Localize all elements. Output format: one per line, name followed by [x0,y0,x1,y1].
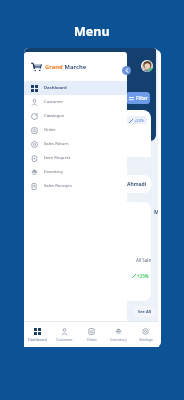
button[interactable]: Customer [51,322,78,347]
button[interactable]: Profile [141,60,153,72]
staticText: M [154,208,158,215]
staticText: Dashboard [28,337,47,342]
staticText: +23% [134,118,145,123]
button[interactable]: Ahmadi [24,175,151,193]
staticText: Inventory [110,337,127,342]
staticText: Order [87,337,97,342]
staticText: Marche [63,63,87,71]
staticText: Customer [44,99,64,105]
button[interactable]: Item Request [24,151,127,165]
staticText: Inventory [44,169,63,175]
staticText: Ahmadi [127,181,147,188]
button[interactable]: Catalogue [24,109,127,123]
button[interactable]: Order [78,322,105,347]
button[interactable]: Collapse menu [122,66,131,75]
button[interactable]: Inventory [24,165,127,179]
button[interactable]: Sales Return [24,137,127,151]
staticText: Menu [74,23,110,40]
button[interactable]: Order [24,123,127,137]
button[interactable]: Sales Receipts [24,179,127,193]
staticText: Item Request [44,155,71,161]
staticText: Sales Return [44,141,69,147]
staticText: All Sales [136,257,151,263]
button[interactable]: Inventory [105,322,132,347]
button[interactable]: Customer [24,95,127,109]
staticText: +25% [137,273,149,279]
button[interactable]: Dashboard [24,81,127,95]
button[interactable]: Dashboard [24,322,51,347]
staticText: See All [138,309,152,314]
staticText: Sales Receipts [44,183,72,189]
staticText: Grand [45,63,63,71]
staticText: Settings [139,337,153,342]
staticText: Order [44,127,56,133]
staticText: Customer [56,337,73,342]
staticText: Dashboard [44,85,67,91]
button[interactable]: Filter [126,92,150,104]
button[interactable]: See All [134,306,155,317]
staticText: Catalogue [44,113,64,119]
button[interactable]: Settings [132,322,159,347]
staticText: Filter [136,95,148,102]
